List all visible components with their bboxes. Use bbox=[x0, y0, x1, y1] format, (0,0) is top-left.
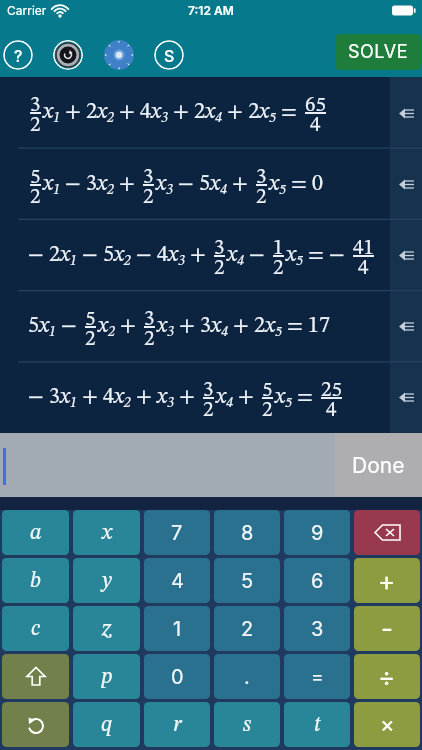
staticText: x1 − 3x2 + bbox=[43, 173, 141, 197]
staticText: x5 = − bbox=[286, 244, 351, 268]
staticText: + bbox=[378, 565, 396, 596]
button[interactable]: - bbox=[354, 606, 420, 651]
button[interactable]: 5x1 − bbox=[28, 291, 390, 362]
staticText: 4 bbox=[171, 569, 184, 593]
staticText: ? bbox=[14, 46, 23, 65]
button[interactable]: p bbox=[73, 654, 140, 699]
staticText: 3 bbox=[203, 380, 214, 401]
button[interactable] bbox=[2, 654, 69, 699]
button[interactable] bbox=[390, 362, 422, 433]
button[interactable]: t bbox=[284, 702, 350, 747]
staticText: 41 bbox=[353, 238, 374, 259]
staticText: 2 bbox=[144, 329, 155, 350]
button[interactable] bbox=[104, 40, 134, 70]
staticText: × bbox=[380, 711, 395, 738]
button[interactable]: + bbox=[354, 558, 420, 603]
staticText: 7:12 AM bbox=[188, 3, 234, 18]
staticText: = bbox=[311, 665, 324, 688]
button[interactable]: 4 bbox=[144, 558, 210, 603]
staticText: c bbox=[31, 618, 40, 640]
button[interactable] bbox=[390, 220, 422, 291]
button[interactable]: Done bbox=[335, 433, 422, 497]
button[interactable]: × bbox=[354, 702, 420, 747]
staticText: 4 bbox=[326, 400, 337, 421]
button[interactable]: . bbox=[214, 654, 280, 699]
button[interactable]: 3 bbox=[28, 77, 390, 149]
button[interactable]: 3 bbox=[284, 606, 350, 651]
staticText: 6 bbox=[311, 569, 324, 593]
button[interactable] bbox=[390, 149, 422, 220]
staticText: 4 bbox=[358, 258, 369, 279]
staticText: 2 bbox=[143, 187, 154, 208]
staticText: 5x1 − bbox=[28, 315, 83, 339]
staticText: Done bbox=[352, 453, 405, 478]
staticText: 1 bbox=[273, 238, 284, 259]
button[interactable]: ÷ bbox=[354, 654, 420, 699]
staticText: r bbox=[173, 714, 182, 736]
button[interactable] bbox=[354, 510, 420, 555]
button[interactable]: 1 bbox=[144, 606, 210, 651]
staticText: 0 bbox=[171, 665, 184, 689]
button[interactable]: c bbox=[2, 606, 69, 651]
button[interactable]: z bbox=[73, 606, 140, 651]
button[interactable]: − 3x1 + 4x2 + x3 + bbox=[28, 362, 390, 433]
staticText: b bbox=[30, 570, 41, 592]
button[interactable]: 5 bbox=[28, 149, 390, 220]
button[interactable] bbox=[390, 291, 422, 362]
button[interactable]: 2 bbox=[214, 606, 280, 651]
staticText: Carrier bbox=[7, 3, 47, 18]
staticText: x3 + 3x4 + 2x5 = 17 bbox=[157, 315, 330, 339]
button[interactable]: 6 bbox=[284, 558, 350, 603]
button[interactable]: = bbox=[284, 654, 350, 699]
staticText: x bbox=[102, 522, 112, 544]
staticText: x3 − 5x4 + bbox=[156, 173, 254, 197]
button[interactable]: 7 bbox=[144, 510, 210, 555]
staticText: - bbox=[381, 613, 393, 644]
button[interactable]: y bbox=[73, 558, 140, 603]
button[interactable]: x bbox=[73, 510, 140, 555]
staticText: 2 bbox=[85, 329, 96, 350]
staticText: x5 = 0 bbox=[269, 173, 324, 197]
button[interactable] bbox=[390, 77, 422, 149]
staticText: 25 bbox=[321, 380, 342, 401]
button[interactable]: 9 bbox=[284, 510, 350, 555]
button[interactable]: a bbox=[2, 510, 69, 555]
staticText: 2 bbox=[262, 400, 273, 421]
staticText: p bbox=[101, 666, 113, 688]
staticText: 2 bbox=[273, 258, 284, 279]
staticText: 2 bbox=[30, 187, 41, 208]
button[interactable]: S bbox=[154, 40, 184, 70]
staticText: 3 bbox=[144, 309, 155, 330]
staticText: 8 bbox=[241, 521, 254, 545]
button[interactable]: 0 bbox=[144, 654, 210, 699]
button[interactable]: b bbox=[2, 558, 69, 603]
staticText: x4 + bbox=[216, 386, 260, 410]
staticText: 7 bbox=[171, 521, 183, 545]
button[interactable]: s bbox=[214, 702, 280, 747]
staticText: 3 bbox=[256, 167, 267, 188]
staticText: 2 bbox=[241, 617, 254, 641]
button[interactable] bbox=[53, 40, 83, 70]
staticText: 3 bbox=[311, 617, 324, 641]
staticText: 1 bbox=[173, 617, 182, 641]
staticText: x4 − bbox=[227, 244, 271, 268]
staticText: q bbox=[101, 714, 113, 736]
staticText: 65 bbox=[305, 95, 326, 116]
staticText: y bbox=[102, 570, 112, 592]
button[interactable]: q bbox=[73, 702, 140, 747]
staticText: ÷ bbox=[378, 661, 396, 692]
button[interactable]: − 2x1 − 5x2 − 4x3 + bbox=[28, 220, 390, 291]
button[interactable]: SOLVE bbox=[335, 34, 421, 70]
button[interactable]: r bbox=[144, 702, 210, 747]
button[interactable]: ? bbox=[3, 40, 33, 70]
staticText: − 2x1 − 5x2 − 4x3 + bbox=[28, 244, 212, 268]
staticText: 9 bbox=[311, 521, 324, 545]
button[interactable]: 8 bbox=[214, 510, 280, 555]
button[interactable]: 5 bbox=[214, 558, 280, 603]
staticText: S bbox=[164, 46, 175, 65]
staticText: x2 + bbox=[98, 315, 142, 339]
button[interactable] bbox=[2, 702, 69, 747]
staticText: 3 bbox=[214, 238, 225, 259]
staticText: 5 bbox=[241, 569, 254, 593]
staticText: 2 bbox=[256, 187, 267, 208]
